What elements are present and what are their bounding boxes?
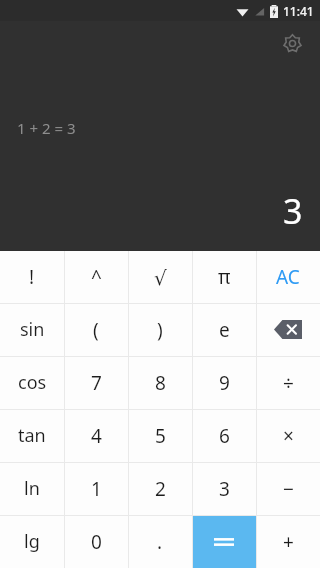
button[interactable]: 2 — [128, 462, 192, 515]
staticText: ÷ — [283, 370, 294, 396]
staticText: ( — [93, 317, 99, 343]
button[interactable]: cos — [0, 356, 64, 409]
staticText: 2 — [155, 476, 166, 502]
button[interactable]: 4 — [64, 409, 128, 462]
button[interactable]: 8 — [128, 356, 192, 409]
button[interactable]: ÷ — [256, 356, 320, 409]
button[interactable]: 6 — [192, 409, 256, 462]
staticText: + — [283, 529, 294, 555]
staticText: 11:41 — [283, 3, 314, 19]
staticText: √ — [154, 266, 167, 289]
staticText: 1 — [91, 476, 102, 502]
staticText: 8 — [155, 370, 166, 396]
button[interactable]: 9 — [192, 356, 256, 409]
button[interactable]: − — [256, 462, 320, 515]
staticText: ) — [157, 317, 163, 343]
staticText: ! — [29, 264, 35, 290]
button[interactable]: Settings — [276, 27, 308, 59]
staticText: ln — [24, 476, 40, 501]
button[interactable]: √ — [128, 251, 192, 303]
staticText: × — [283, 423, 294, 449]
button[interactable]: Backspace — [256, 303, 320, 356]
staticText: AC — [276, 264, 300, 290]
staticText: 3 — [219, 476, 230, 502]
button[interactable]: 7 — [64, 356, 128, 409]
staticText: π — [218, 264, 231, 290]
button[interactable]: Equals — [192, 515, 256, 568]
staticText: 4 — [91, 423, 102, 449]
button[interactable]: 1 — [64, 462, 128, 515]
staticText: e — [219, 317, 230, 343]
button[interactable]: tan — [0, 409, 64, 462]
button[interactable]: 3 — [192, 462, 256, 515]
button[interactable]: ln — [0, 462, 64, 515]
staticText: sin — [20, 317, 45, 342]
staticText: 1 + 2 = 3 — [17, 118, 76, 138]
staticText: 9 — [219, 370, 230, 396]
button[interactable]: sin — [0, 303, 64, 356]
staticText: . — [157, 529, 163, 555]
button[interactable]: ^ — [64, 251, 128, 303]
button[interactable]: ) — [128, 303, 192, 356]
staticText: tan — [18, 423, 46, 448]
button[interactable]: AC — [256, 251, 320, 303]
button[interactable]: e — [192, 303, 256, 356]
button[interactable]: 5 — [128, 409, 192, 462]
staticText: 5 — [155, 423, 166, 449]
button[interactable]: ( — [64, 303, 128, 356]
button[interactable]: ! — [0, 251, 64, 303]
button[interactable]: × — [256, 409, 320, 462]
button[interactable]: lg — [0, 515, 64, 568]
staticText: ^ — [91, 264, 102, 290]
staticText: 0 — [91, 529, 102, 555]
staticText: 7 — [91, 370, 102, 396]
button[interactable]: 0 — [64, 515, 128, 568]
staticText: lg — [24, 529, 40, 554]
button[interactable]: . — [128, 515, 192, 568]
staticText: − — [283, 476, 294, 502]
button[interactable]: + — [256, 515, 320, 568]
button[interactable]: π — [192, 251, 256, 303]
staticText: 3 — [283, 188, 303, 234]
staticText: 6 — [219, 423, 230, 449]
staticText: cos — [18, 370, 47, 395]
